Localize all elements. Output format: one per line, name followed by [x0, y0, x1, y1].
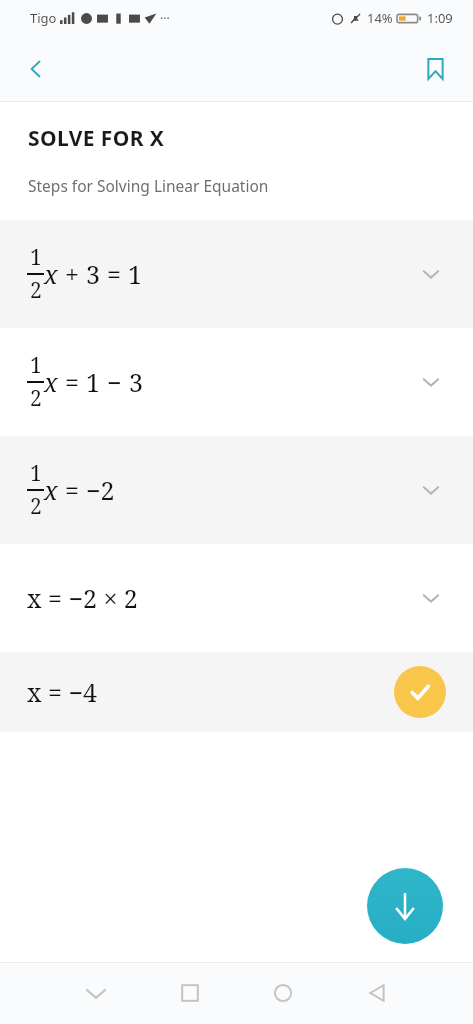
staticText: 1	[30, 459, 42, 488]
button[interactable]: Expand step	[409, 468, 453, 512]
staticText: 1	[86, 365, 100, 399]
staticText: =	[65, 473, 79, 507]
button[interactable]: 1	[0, 436, 473, 544]
staticText: 1	[30, 243, 42, 272]
staticText: x	[44, 365, 58, 399]
staticText: ···	[160, 10, 170, 26]
button[interactable]: Recents	[164, 967, 216, 1019]
button[interactable]: Hide keyboard	[70, 967, 122, 1019]
staticText: 3	[86, 257, 100, 291]
button[interactable]: Expand step	[409, 360, 453, 404]
staticText: x	[44, 473, 58, 507]
button[interactable]: 1	[0, 328, 473, 436]
staticText: 1	[30, 351, 42, 380]
button[interactable]: x = −2 × 2	[0, 544, 473, 652]
button[interactable]: Back	[12, 45, 60, 93]
staticText: x = −4	[27, 675, 97, 709]
button[interactable]: 1	[0, 220, 473, 328]
button[interactable]: Bookmark	[411, 45, 459, 93]
staticText: Tigo	[30, 9, 57, 27]
button[interactable]: Back	[351, 967, 403, 1019]
button[interactable]: Home	[257, 967, 309, 1019]
staticText: x = −2 × 2	[27, 581, 138, 615]
staticText: x	[44, 257, 58, 291]
staticText: 3	[129, 365, 143, 399]
staticText: =	[65, 365, 79, 399]
staticText: 14%	[367, 9, 393, 27]
staticText: 1	[128, 257, 142, 291]
staticText: Steps for Solving Linear Equation	[28, 175, 269, 196]
staticText: +	[65, 257, 79, 291]
staticText: 2	[30, 276, 42, 305]
staticText: 2	[30, 492, 42, 521]
button[interactable]: Expand step	[409, 576, 453, 620]
button[interactable]: x = −4	[0, 652, 473, 732]
staticText: =	[107, 257, 121, 291]
button[interactable]: Expand step	[409, 252, 453, 296]
button[interactable]: Scroll down	[367, 868, 443, 944]
staticText: 1:09	[427, 9, 453, 27]
button[interactable]: Solved	[394, 666, 446, 718]
staticText: −2	[86, 473, 115, 507]
staticText: −	[107, 365, 122, 399]
staticText: SOLVE FOR X	[28, 124, 165, 153]
staticText: 2	[30, 384, 42, 413]
